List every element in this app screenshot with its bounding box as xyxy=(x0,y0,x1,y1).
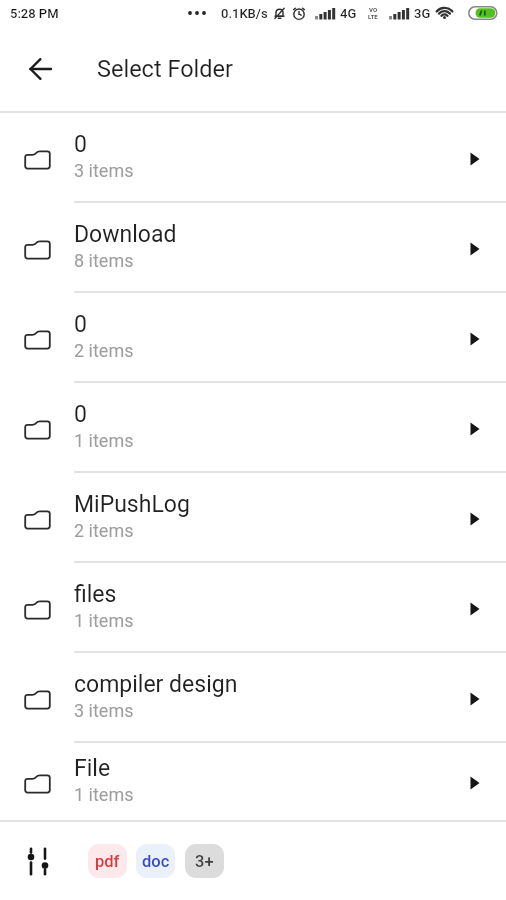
staticText: MiPushLog xyxy=(74,491,190,518)
staticText: 0 xyxy=(74,131,87,158)
staticText: 1 items xyxy=(74,610,134,631)
staticText: 0 xyxy=(74,311,87,338)
staticText: LTE xyxy=(368,13,378,20)
staticText: 0.1KB/s xyxy=(221,6,268,21)
staticText: 3G xyxy=(414,6,431,21)
staticText: File xyxy=(74,755,111,782)
button[interactable]: MiPushLog xyxy=(0,473,506,563)
staticText: 8 items xyxy=(74,250,134,271)
button[interactable]: 0 xyxy=(0,383,506,473)
staticText: 3+ xyxy=(195,852,214,871)
button[interactable]: 0 xyxy=(0,113,506,203)
button[interactable] xyxy=(18,47,62,91)
button[interactable]: files xyxy=(0,563,506,653)
staticText: 3 items xyxy=(74,700,134,721)
button[interactable] xyxy=(18,841,58,881)
staticText: compiler design xyxy=(74,671,238,698)
staticText: 2 items xyxy=(74,340,134,361)
button[interactable]: 3+ xyxy=(185,844,224,878)
staticText: 4G xyxy=(340,6,357,21)
button[interactable]: Download xyxy=(0,203,506,293)
staticText: 1 items xyxy=(74,784,134,805)
button[interactable]: compiler design xyxy=(0,653,506,743)
staticText: 3 items xyxy=(74,160,134,181)
staticText: 2 items xyxy=(74,520,134,541)
staticText: Select Folder xyxy=(97,55,233,83)
staticText: pdf xyxy=(95,852,120,871)
staticText: doc xyxy=(142,852,170,871)
staticText: 1 items xyxy=(74,430,134,451)
staticText: Download xyxy=(74,221,177,248)
staticText: 0 xyxy=(74,401,87,428)
staticText: VO xyxy=(369,6,378,13)
staticText: files xyxy=(74,581,117,608)
button[interactable]: doc xyxy=(136,844,175,878)
staticText: 5:28 PM xyxy=(10,6,59,21)
button[interactable]: File xyxy=(0,743,506,820)
button[interactable]: pdf xyxy=(88,844,127,878)
button[interactable]: 0 xyxy=(0,293,506,383)
